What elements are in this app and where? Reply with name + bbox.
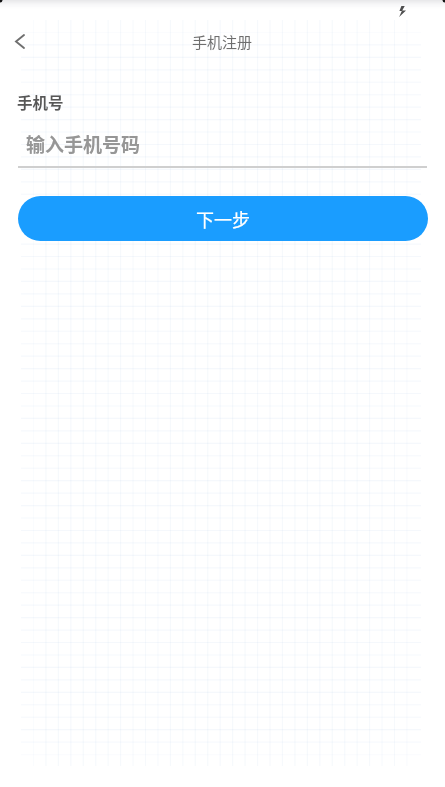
button[interactable]: 下一步 <box>18 196 428 241</box>
staticText: 下一步 <box>196 206 250 232</box>
staticText: 输入手机号码 <box>26 130 141 158</box>
staticText: 手机号 <box>17 91 64 111</box>
button[interactable]: Back <box>0 21 40 61</box>
staticText: 手机注册 <box>192 31 253 53</box>
button[interactable]: 输入手机号码 <box>18 127 445 160</box>
